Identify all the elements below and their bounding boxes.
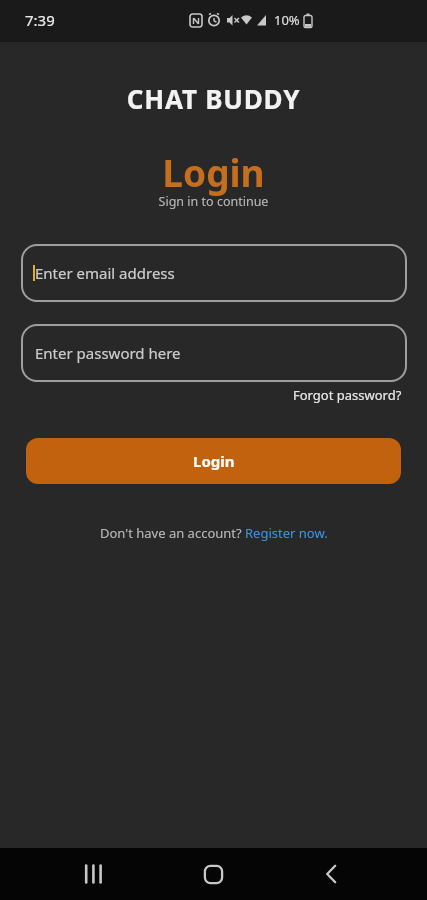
staticText: Login [193,451,235,471]
button[interactable] [70,850,118,898]
button[interactable] [308,850,356,898]
staticText: CHAT BUDDY [0,81,427,116]
staticText: 7:39 [25,10,55,30]
staticText: Login [0,147,427,197]
button[interactable]: Enter email address [21,244,407,302]
button[interactable]: Don't have an account? Register now. [100,524,328,542]
staticText: Enter password here [35,343,181,363]
button[interactable]: Login [26,438,401,484]
button[interactable] [189,850,237,898]
staticText: 10% [274,11,300,29]
button[interactable]: Forgot password? [293,386,402,404]
staticText: Sign in to continue [0,193,427,210]
button[interactable]: Enter password here [21,324,407,382]
staticText: Enter email address [35,263,175,283]
